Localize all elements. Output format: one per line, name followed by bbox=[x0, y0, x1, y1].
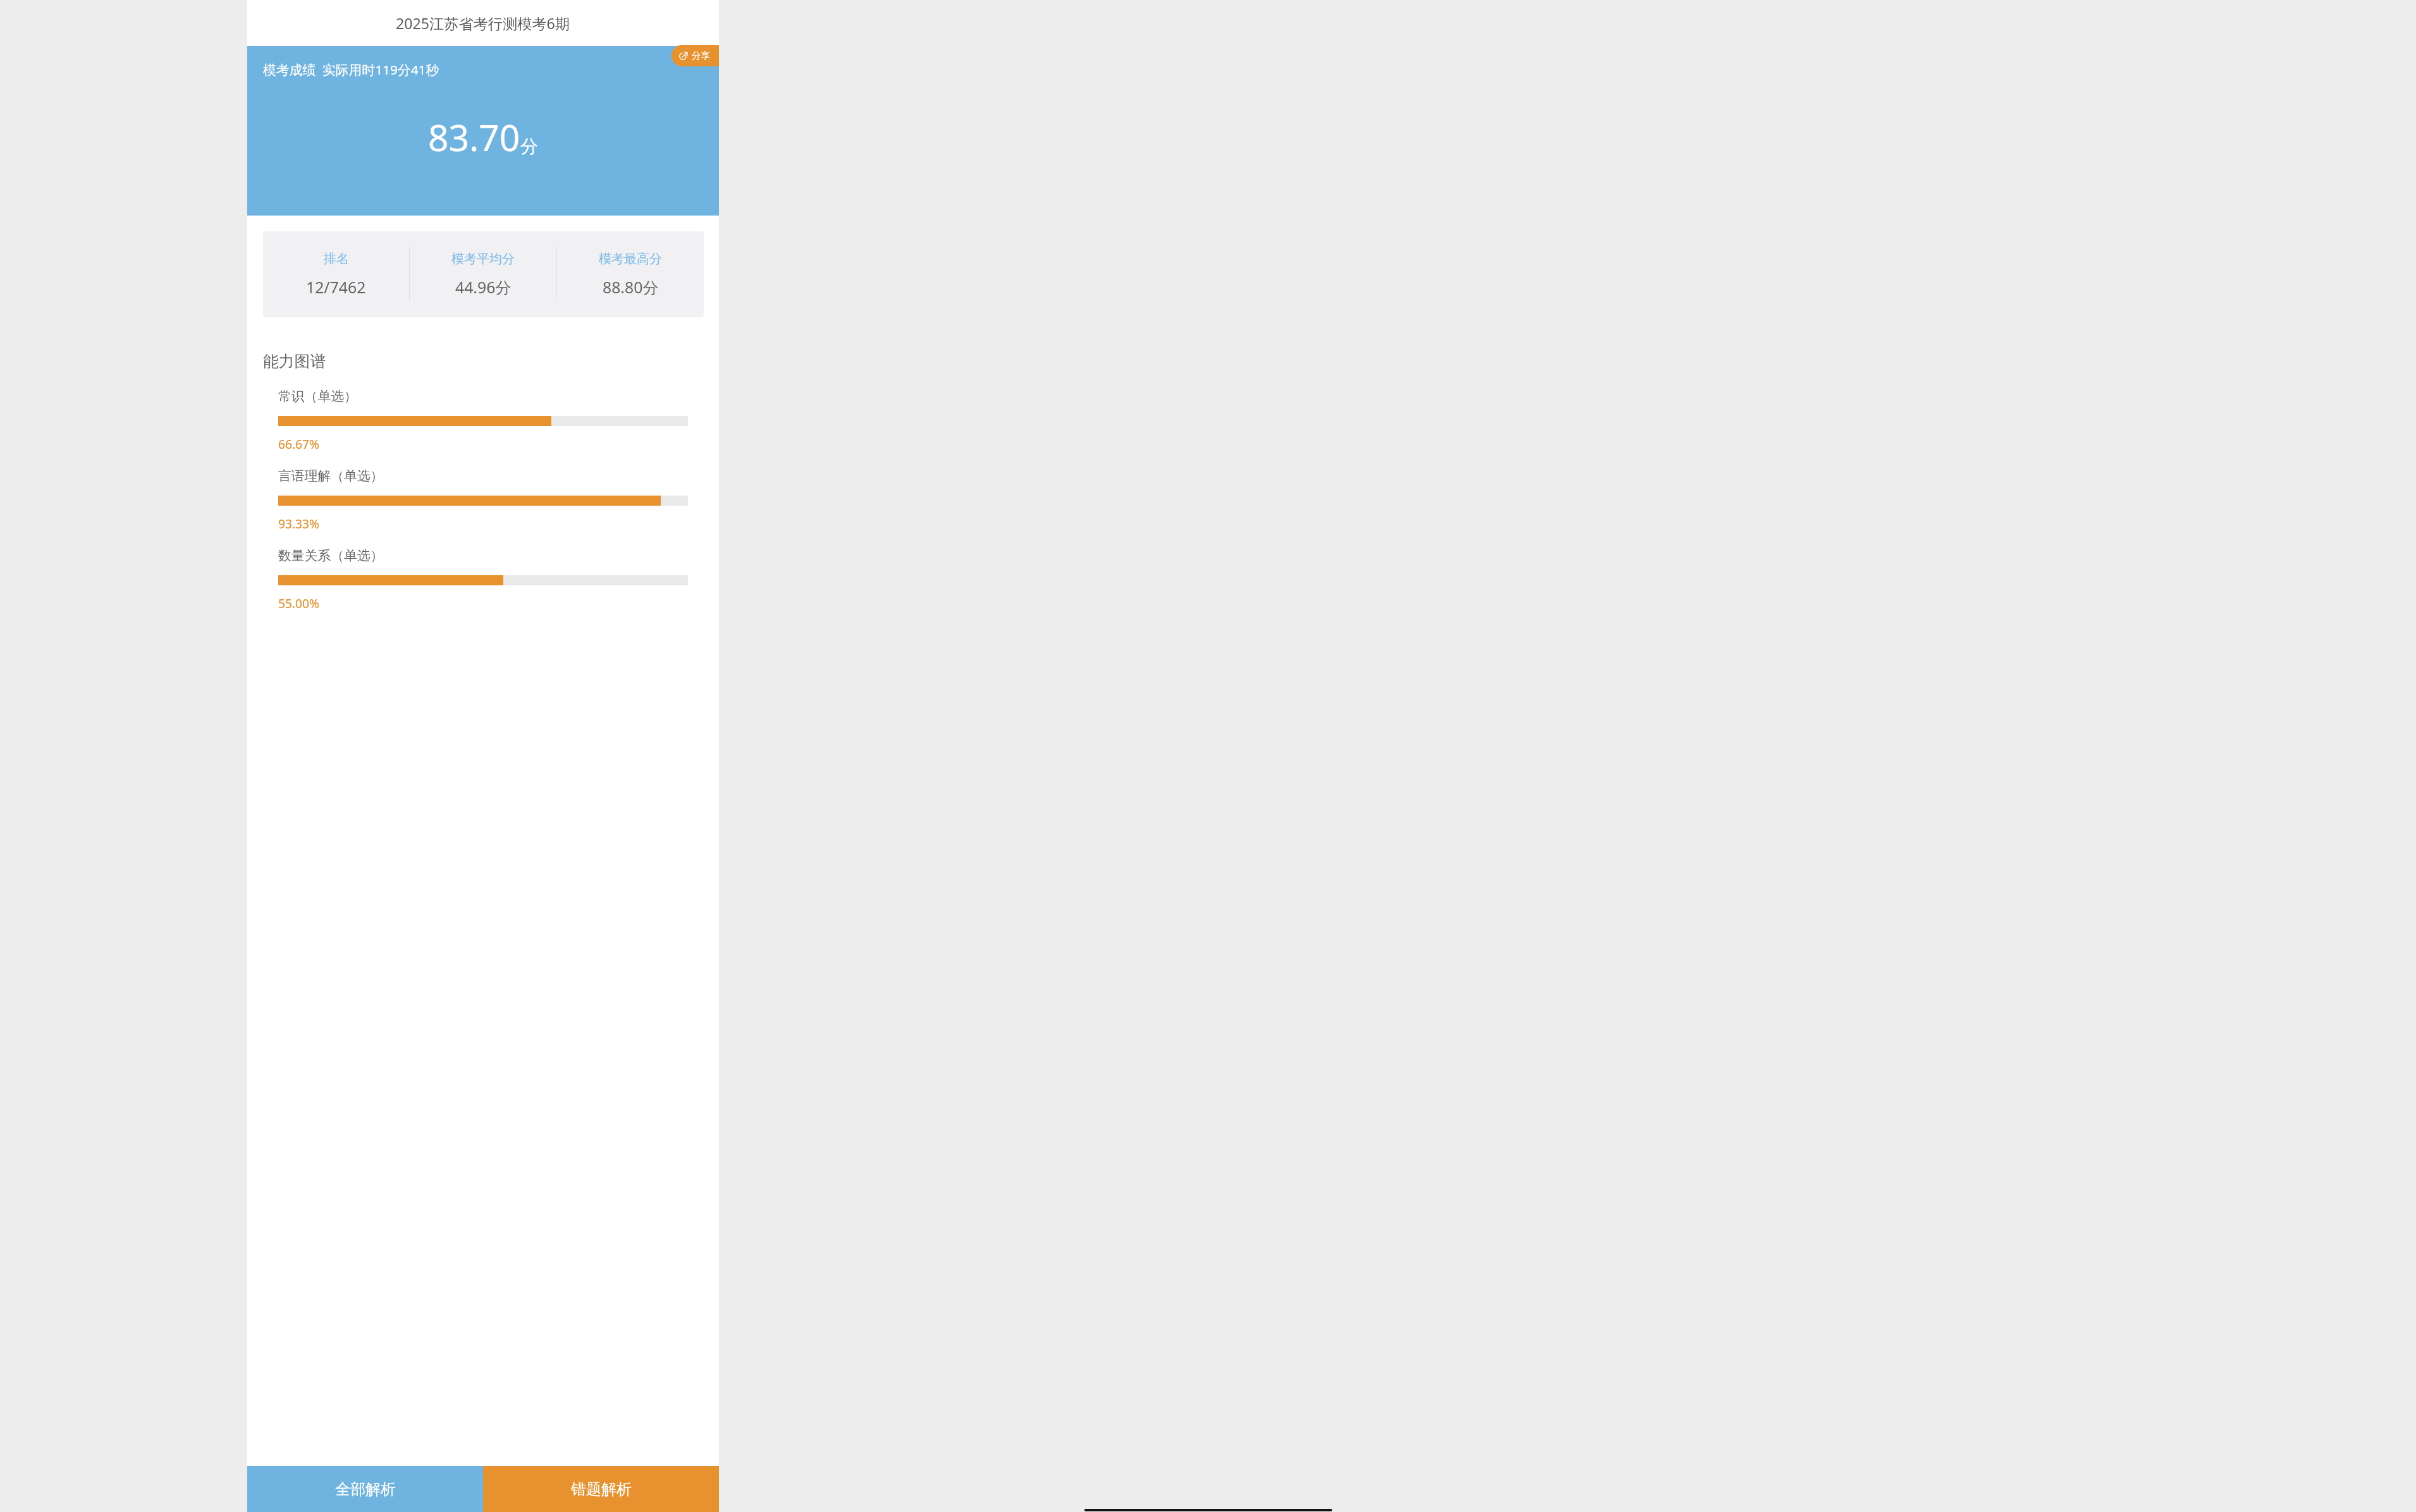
staticText: 排名 bbox=[324, 251, 349, 267]
staticText: 常识（单选） bbox=[278, 388, 357, 405]
staticText: 数量关系（单选） bbox=[278, 547, 384, 564]
staticText: 83.70 bbox=[428, 113, 520, 161]
staticText: 55.00% bbox=[278, 595, 319, 611]
staticText: 分 bbox=[520, 135, 538, 157]
staticText: 88.80分 bbox=[603, 276, 659, 298]
staticText: 2025江苏省考行测模考6期 bbox=[396, 13, 570, 34]
staticText: 12/7462 bbox=[306, 276, 366, 298]
staticText: 模考平均分 bbox=[451, 251, 515, 267]
button[interactable]: 错题解析 bbox=[483, 1466, 719, 1512]
staticText: 全部解析 bbox=[335, 1480, 396, 1499]
staticText: 能力图谱 bbox=[263, 351, 326, 371]
staticText: 言语理解（单选） bbox=[278, 468, 384, 484]
button[interactable]: Share bbox=[671, 45, 719, 66]
staticText: 44.96分 bbox=[455, 276, 512, 298]
staticText: 错题解析 bbox=[571, 1480, 632, 1499]
staticText: 93.33% bbox=[278, 515, 319, 532]
staticText: 66.67% bbox=[278, 436, 319, 452]
staticText: 分享 bbox=[692, 50, 710, 61]
staticText: 模考成绩 实际用时119分41秒 bbox=[263, 61, 439, 78]
staticText: 模考最高分 bbox=[599, 251, 662, 267]
button[interactable]: 全部解析 bbox=[247, 1466, 483, 1512]
